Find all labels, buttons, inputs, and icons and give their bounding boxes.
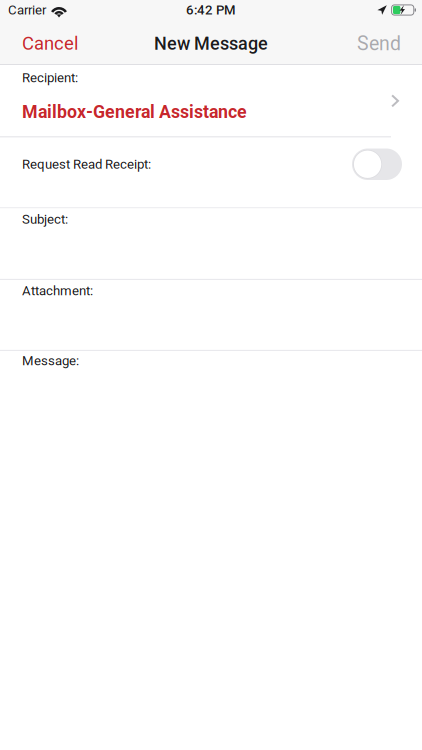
button[interactable]: Request Read Receipt xyxy=(352,148,402,180)
button[interactable]: Attachment: xyxy=(0,280,422,350)
staticText: Attachment: xyxy=(22,283,93,298)
staticText: Mailbox-General Assistance xyxy=(22,101,247,122)
staticText: Subject: xyxy=(22,211,68,227)
staticText: New Message xyxy=(154,33,268,54)
button[interactable]: Cancel xyxy=(18,24,82,60)
button[interactable]: Message: xyxy=(0,351,422,471)
staticText: Carrier xyxy=(8,2,46,18)
button[interactable]: Subject: xyxy=(0,208,422,279)
staticText: Message: xyxy=(22,353,79,368)
staticText: Cancel xyxy=(22,33,78,54)
staticText: Send xyxy=(357,32,401,55)
button[interactable]: Send xyxy=(353,23,405,61)
staticText: 6:42 PM xyxy=(186,2,236,18)
button[interactable]: Recipient: xyxy=(0,65,422,136)
staticText: Recipient: xyxy=(22,70,78,85)
staticText: Request Read Receipt: xyxy=(22,156,151,172)
